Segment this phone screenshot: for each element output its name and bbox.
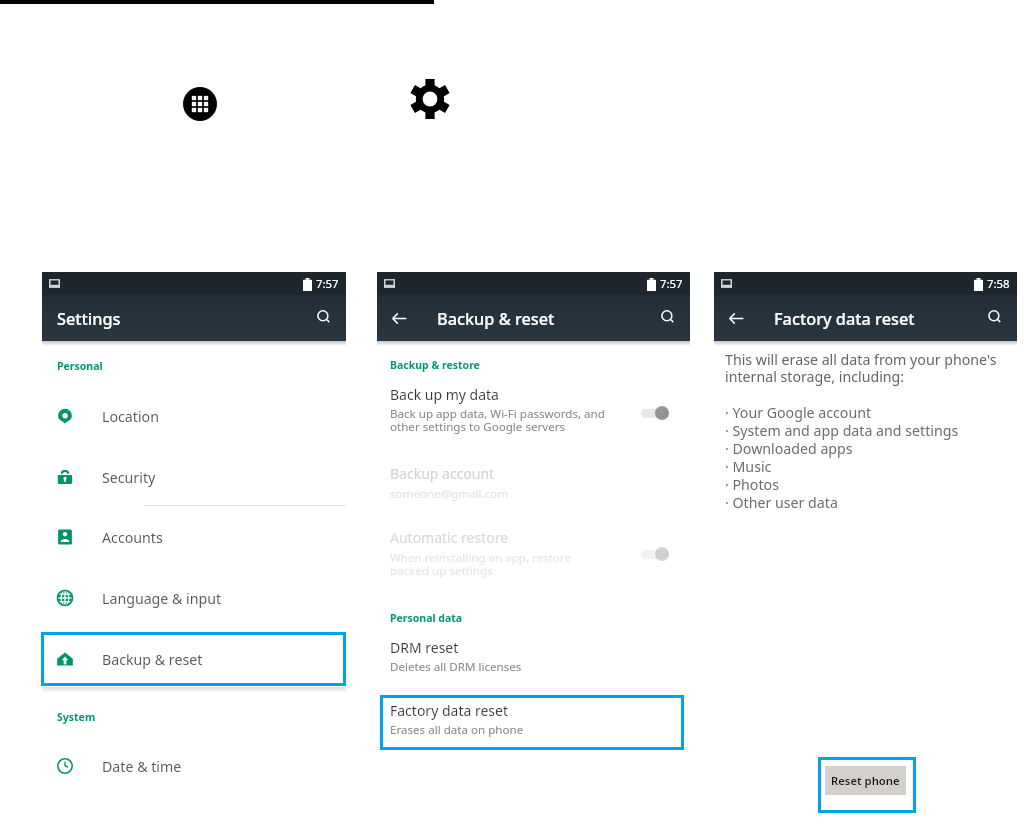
staticText: When reinstalling an app, restore backed… <box>390 550 571 578</box>
button[interactable]: Search <box>653 304 681 332</box>
staticText: Personal <box>57 359 103 373</box>
staticText: Erases all data on phone <box>390 722 524 738</box>
staticText: Deletes all DRM licenses <box>390 659 522 675</box>
button[interactable]: DRM reset <box>377 638 690 675</box>
button[interactable]: All apps <box>183 87 217 121</box>
staticText: Language & input <box>102 589 222 608</box>
staticText: · Your Google account · System and app d… <box>725 403 959 512</box>
staticText: Back up app data, Wi-Fi passwords, and o… <box>390 406 605 434</box>
staticText: Automatic restore <box>390 528 509 547</box>
button[interactable]: Search <box>309 304 337 332</box>
button[interactable]: Settings <box>408 77 452 121</box>
button[interactable]: Security <box>42 450 346 504</box>
staticText: Personal data <box>390 611 463 625</box>
staticText: Date & time <box>102 757 182 776</box>
button[interactable]: Accounts <box>42 510 346 564</box>
staticText: Backup & reset <box>437 308 555 330</box>
button[interactable]: Location <box>42 389 346 443</box>
staticText: Settings <box>57 308 121 330</box>
staticText: Reset phone <box>831 773 900 788</box>
staticText: Security <box>102 468 156 487</box>
staticText: Accounts <box>102 528 163 547</box>
button[interactable]: Back <box>721 303 751 333</box>
staticText: DRM reset <box>390 638 459 657</box>
button[interactable]: Reset phone <box>825 766 906 795</box>
button[interactable]: Back up my data <box>377 385 690 437</box>
staticText: Factory data reset <box>774 308 915 330</box>
button[interactable]: Language & input <box>42 571 346 625</box>
staticText: Location <box>102 407 159 426</box>
button[interactable]: Factory data reset <box>377 701 690 738</box>
staticText: System <box>57 710 96 724</box>
staticText: Backup account <box>390 464 495 483</box>
button[interactable]: Backup & reset <box>42 632 346 686</box>
staticText: This will erase all data from your phone… <box>725 350 997 387</box>
staticText: Backup & restore <box>390 358 480 372</box>
staticText: 7:57 <box>660 276 683 292</box>
staticText: someone@gmail.com <box>390 486 509 502</box>
staticText: Factory data reset <box>390 701 508 720</box>
button[interactable]: Date & time <box>42 739 346 793</box>
staticText: Backup & reset <box>102 650 203 669</box>
button[interactable]: Search <box>980 304 1008 332</box>
staticText: 7:58 <box>987 276 1010 292</box>
staticText: Back up my data <box>390 385 499 404</box>
button[interactable]: Back <box>384 303 414 333</box>
staticText: 7:57 <box>316 276 339 292</box>
